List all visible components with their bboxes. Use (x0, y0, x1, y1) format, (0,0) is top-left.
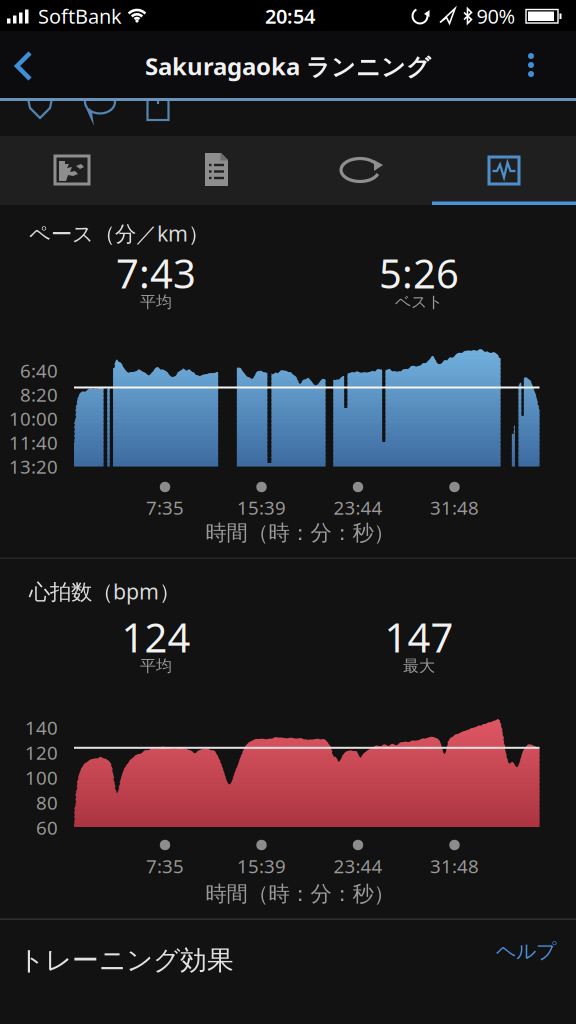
staticText: 11:40 (9, 430, 58, 455)
staticText: 147 (384, 610, 453, 663)
button[interactable]: Comment (78, 81, 122, 125)
staticText: SoftBank (38, 3, 122, 29)
button[interactable]: Photos (0, 136, 144, 205)
staticText: 20:54 (265, 3, 315, 29)
staticText: 15:39 (237, 854, 286, 878)
button[interactable]: トレーニング効果 (0, 920, 576, 992)
button[interactable]: Share (136, 80, 180, 124)
staticText: 7:35 (146, 854, 184, 878)
staticText: 15:39 (237, 495, 286, 520)
staticText: 7:35 (146, 495, 184, 520)
staticText: 80 (36, 790, 58, 815)
staticText: 時間（時：分：秒） (205, 520, 394, 546)
staticText: ヘルプ (496, 939, 556, 964)
staticText: トレーニング効果 (18, 944, 234, 977)
staticText: ベスト (395, 292, 443, 312)
button[interactable]: Laps (288, 136, 432, 205)
staticText: 90% (476, 3, 515, 29)
staticText: 140 (25, 715, 58, 740)
staticText: 時間（時：分：秒） (205, 881, 394, 907)
staticText: 31:48 (430, 495, 479, 520)
button[interactable]: Charts (432, 136, 576, 205)
staticText: 23:44 (333, 854, 382, 878)
button[interactable]: Back (0, 31, 48, 98)
staticText: Sakuragaoka ランニング (145, 50, 431, 82)
staticText: ペース（分／km） (29, 219, 209, 247)
staticText: 31:48 (430, 854, 479, 878)
staticText: 最大 (403, 656, 435, 676)
staticText: 心拍数（bpm） (29, 577, 180, 605)
staticText: 60 (36, 815, 58, 840)
staticText: 10:00 (9, 406, 58, 431)
staticText: 7:43 (116, 246, 196, 299)
staticText: 120 (25, 740, 58, 765)
staticText: 124 (121, 610, 190, 663)
staticText: 5:26 (379, 246, 459, 299)
staticText: 平均 (140, 656, 172, 676)
staticText: 8:20 (20, 382, 58, 407)
button[interactable]: Details (144, 136, 288, 205)
staticText: 6:40 (20, 358, 58, 383)
button[interactable]: More options (513, 31, 549, 98)
staticText: 平均 (140, 292, 172, 312)
staticText: 23:44 (333, 495, 382, 520)
staticText: 100 (25, 765, 58, 790)
button[interactable]: Like (18, 83, 62, 127)
staticText: 13:20 (9, 454, 58, 479)
